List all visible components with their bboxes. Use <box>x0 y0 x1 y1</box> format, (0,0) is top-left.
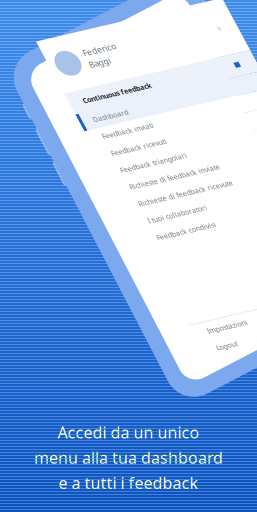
button[interactable]: Feedback triangolari <box>36 165 222 182</box>
staticText: Dashboard <box>49 118 84 127</box>
button[interactable]: Dashboard <box>36 114 222 131</box>
staticText: Feedback ricevuti <box>49 152 104 161</box>
button[interactable]: Feedback ricevuti <box>36 148 222 165</box>
staticText: menu alla tua dashboard <box>34 447 223 468</box>
button[interactable]: Impostazioni <box>36 326 222 343</box>
button[interactable]: Feedback condivisi <box>36 232 222 249</box>
staticText: Continuous feedback <box>49 100 117 108</box>
staticText: Feedback triangolari <box>49 169 115 178</box>
staticText: e a tutti i feedback <box>58 472 198 493</box>
staticText: I tuoi collaboratori <box>49 220 108 228</box>
button[interactable]: Richieste di feedback inviate <box>36 182 222 199</box>
button[interactable]: I tuoi collaboratori <box>36 216 222 232</box>
button[interactable]: Logout <box>36 343 222 359</box>
staticText: Federico <box>72 56 105 67</box>
button[interactable]: Federico <box>36 41 222 93</box>
staticText: Feedback inviati <box>49 135 100 144</box>
staticText: Accedi da un unico <box>57 422 199 443</box>
button[interactable]: Richieste di feedback ricevute <box>36 199 222 216</box>
button[interactable]: Feedback inviati <box>36 131 222 148</box>
staticText: Feedback condivisi <box>49 236 108 245</box>
staticText: Baggi <box>72 68 93 79</box>
staticText: Richieste di feedback inviate <box>49 186 139 195</box>
staticText: Richieste di feedback ricevute <box>49 203 143 212</box>
